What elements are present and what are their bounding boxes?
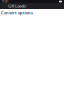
- staticText: 9:41: [2, 0, 9, 3]
- staticText: Convert options: [1, 10, 33, 15]
- staticText: Gift Loader: [8, 3, 27, 9]
